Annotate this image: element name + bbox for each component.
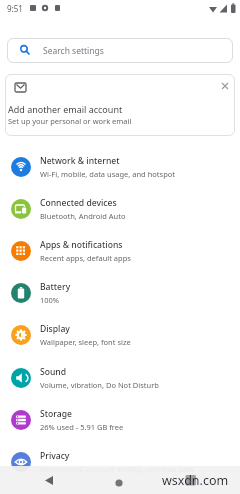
staticText: Display — [40, 323, 70, 335]
button[interactable]: Battery — [0, 272, 240, 314]
staticText: Storage — [40, 408, 72, 420]
staticText: Volume, vibration, Do Not Disturb — [40, 380, 159, 390]
button[interactable]: Apps & notifications — [0, 230, 240, 272]
staticText: Sound — [40, 366, 67, 378]
staticText: Permissions, account activity, personal … — [40, 464, 194, 474]
staticText: Search settings — [43, 45, 104, 57]
staticText: Bluetooth, Android Auto — [40, 211, 126, 221]
staticText: Battery — [40, 281, 71, 293]
staticText: Network & internet — [40, 155, 120, 167]
button[interactable]: Privacy — [0, 441, 240, 483]
button[interactable] — [108, 469, 130, 491]
staticText: Add another email account — [8, 103, 123, 115]
button[interactable]: Storage — [0, 399, 240, 441]
staticText: Connected devices — [40, 197, 117, 209]
staticText: 100% — [40, 295, 60, 305]
staticText: Apps & notifications — [40, 239, 123, 251]
button[interactable]: Add another email account — [5, 74, 235, 136]
staticText: Recent apps, default apps — [40, 253, 131, 263]
button[interactable]: Sound — [0, 357, 240, 399]
staticText: Privacy — [40, 450, 70, 462]
button[interactable]: Connected devices — [0, 188, 240, 230]
button[interactable]: Display — [0, 314, 240, 356]
button[interactable] — [179, 469, 201, 491]
staticText: Set up your personal or work email — [8, 116, 132, 126]
staticText: wsxdn.com — [162, 472, 229, 489]
staticText: Wallpaper, sleep, font size — [40, 337, 131, 347]
button[interactable] — [38, 469, 60, 491]
button[interactable]: Network & internet — [0, 146, 240, 188]
staticText: Wi-Fi, mobile, data usage, and hotspot — [40, 169, 175, 179]
staticText: 26% used - 5.91 GB free — [40, 422, 124, 432]
button[interactable] — [218, 79, 232, 93]
staticText: 9:51 — [7, 3, 23, 14]
button[interactable]: Search settings — [7, 38, 233, 63]
